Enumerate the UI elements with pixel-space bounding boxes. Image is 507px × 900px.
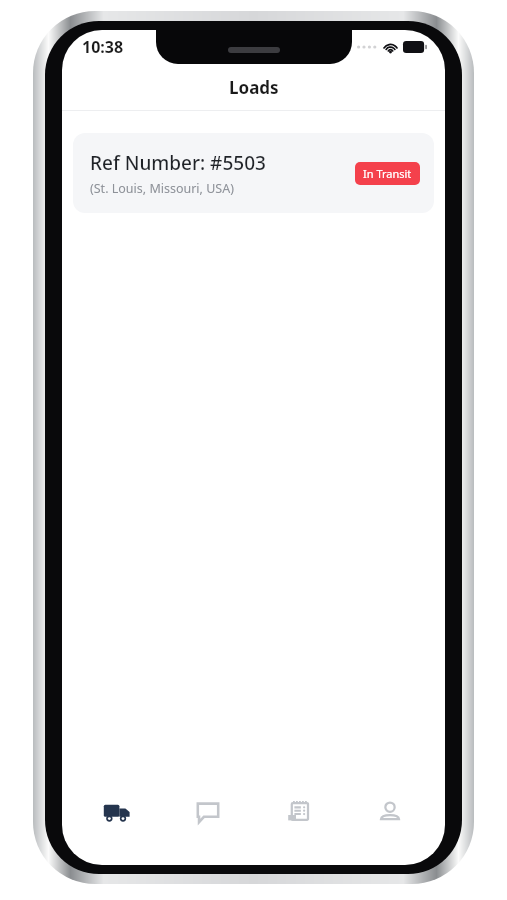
staticText: (St. Louis, Missouri, USA)	[90, 180, 234, 197]
button[interactable]: Loads	[81, 787, 153, 837]
staticText: Ref Number: #5503	[90, 150, 266, 176]
button[interactable]: Messages	[172, 787, 244, 837]
staticText: Loads	[229, 76, 279, 99]
staticText: 10:38	[82, 36, 124, 58]
staticText: In Transit	[363, 166, 412, 181]
button[interactable]: Ref Number: #5503	[73, 133, 434, 213]
button[interactable]: Profile	[354, 787, 426, 837]
button[interactable]: In Transit	[355, 162, 420, 185]
button[interactable]: Invoices	[263, 787, 335, 837]
